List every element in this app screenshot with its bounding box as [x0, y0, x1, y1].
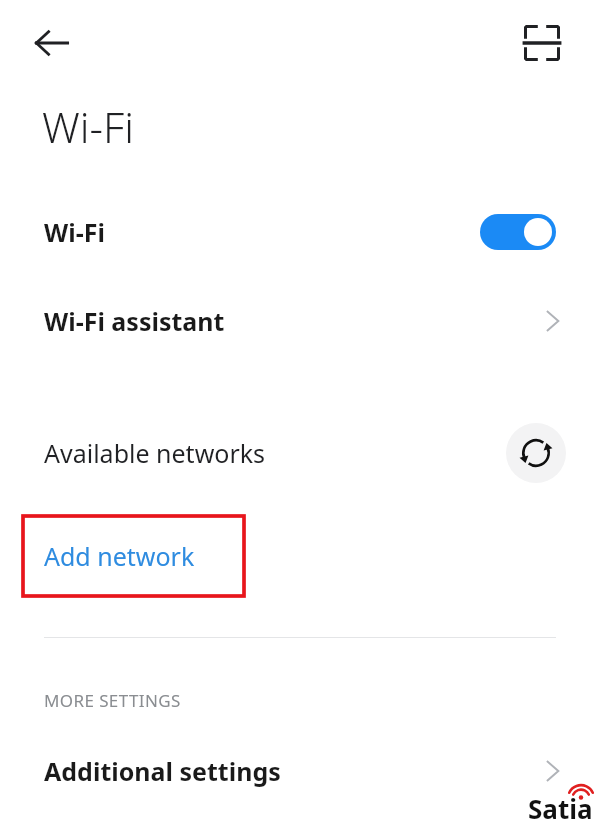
button[interactable]: Wi-Fi assistant: [0, 288, 600, 354]
button[interactable]: Scan QR code: [518, 19, 566, 67]
button[interactable]: Add network: [21, 514, 246, 598]
staticText: Wi-Fi: [44, 215, 105, 249]
staticText: Add network: [44, 539, 195, 573]
button[interactable]: Wi-Fi on: [480, 214, 556, 250]
staticText: Additional settings: [44, 754, 281, 788]
staticText: Wi-Fi assistant: [44, 304, 225, 338]
button[interactable]: Refresh: [506, 423, 566, 483]
staticText: Available networks: [44, 436, 266, 470]
staticText: Wi-Fi: [42, 98, 134, 155]
staticText: MORE SETTINGS: [44, 689, 181, 712]
button[interactable]: Wi-Fi: [0, 198, 600, 266]
staticText: Satia: [528, 791, 593, 826]
button[interactable]: Back: [28, 19, 76, 67]
button[interactable]: Additional settings: [0, 740, 600, 802]
